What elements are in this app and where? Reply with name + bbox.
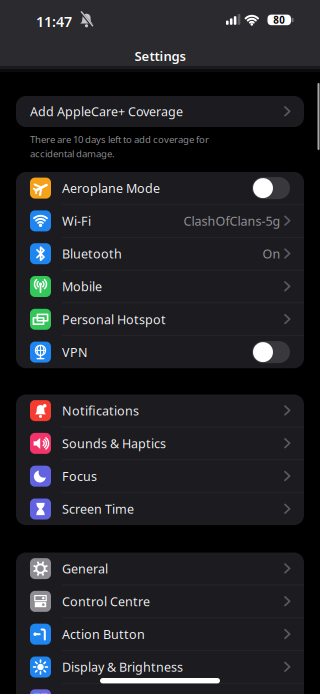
staticText: Wi-Fi	[62, 213, 91, 229]
button[interactable]: Home Screen & App Library	[16, 684, 304, 694]
staticText: Personal Hotspot	[62, 311, 166, 328]
staticText: On	[262, 245, 280, 262]
button[interactable]: Focus	[16, 460, 304, 492]
staticText: General	[62, 560, 108, 577]
button[interactable]: Display & Brightness	[16, 651, 304, 683]
staticText: 80	[273, 13, 285, 26]
staticText: VPN	[62, 344, 88, 360]
staticText: Action Button	[62, 626, 145, 642]
staticText: Screen Time	[62, 501, 134, 517]
staticText: accidental damage.	[30, 147, 115, 160]
staticText: 11:47	[36, 12, 72, 31]
staticText: ClashOfClans-5g	[183, 213, 280, 229]
staticText: Notifications	[62, 402, 139, 419]
staticText: Mobile	[62, 278, 102, 295]
button[interactable]: Bluetooth	[16, 238, 304, 270]
button[interactable]: Notifications	[16, 394, 304, 427]
button[interactable]: VPN	[252, 341, 290, 363]
staticText: There are 10 days left to add coverage f…	[30, 133, 209, 146]
staticText: Sounds & Haptics	[62, 435, 166, 452]
staticText: Focus	[62, 468, 97, 484]
staticText: Aeroplane Mode	[62, 180, 160, 196]
staticText: Add AppleCare+ Coverage	[30, 103, 183, 120]
button[interactable]: Aeroplane Mode	[252, 177, 290, 199]
button[interactable]: Add AppleCare+ Coverage	[16, 96, 304, 127]
staticText: Control Centre	[62, 593, 150, 610]
button[interactable]: Control Centre	[16, 585, 304, 617]
staticText: Display & Brightness	[62, 659, 183, 675]
button[interactable]: Action Button	[16, 618, 304, 650]
button[interactable]: Wi-Fi	[16, 205, 304, 237]
button[interactable]: Screen Time	[16, 493, 304, 525]
staticText: Bluetooth	[62, 245, 122, 262]
button[interactable]: Personal Hotspot	[16, 303, 304, 335]
staticText: Settings	[134, 47, 185, 65]
button[interactable]: Sounds & Haptics	[16, 427, 304, 459]
button[interactable]: General	[16, 552, 304, 585]
button[interactable]: Mobile	[16, 270, 304, 303]
